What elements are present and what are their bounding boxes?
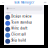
button[interactable]: Client call <box>4 32 44 38</box>
staticText: 3:15 PM <box>11 36 16 38</box>
button[interactable]: Design review <box>4 14 44 20</box>
staticText: 1:00 PM <box>11 30 16 32</box>
staticText: 10:30 AM <box>11 24 17 26</box>
staticText: Task Manager <box>14 1 34 4</box>
staticText: Ship build <box>11 39 26 42</box>
staticText: Write draft <box>11 27 27 30</box>
staticText: Search <box>9 8 15 9</box>
staticText: 9:00 AM <box>11 18 16 20</box>
button[interactable]: Team standup <box>4 20 44 26</box>
staticText: 5:00 PM <box>11 42 16 44</box>
staticText: Client call <box>11 33 26 36</box>
staticText: Team standup <box>11 21 32 24</box>
staticText: TODAY <box>6 12 11 14</box>
button[interactable]: Write draft <box>4 26 44 32</box>
staticText: 9:41 <box>2 2 5 3</box>
staticText: Design review <box>11 15 31 18</box>
button[interactable]: Ship build <box>4 38 44 44</box>
